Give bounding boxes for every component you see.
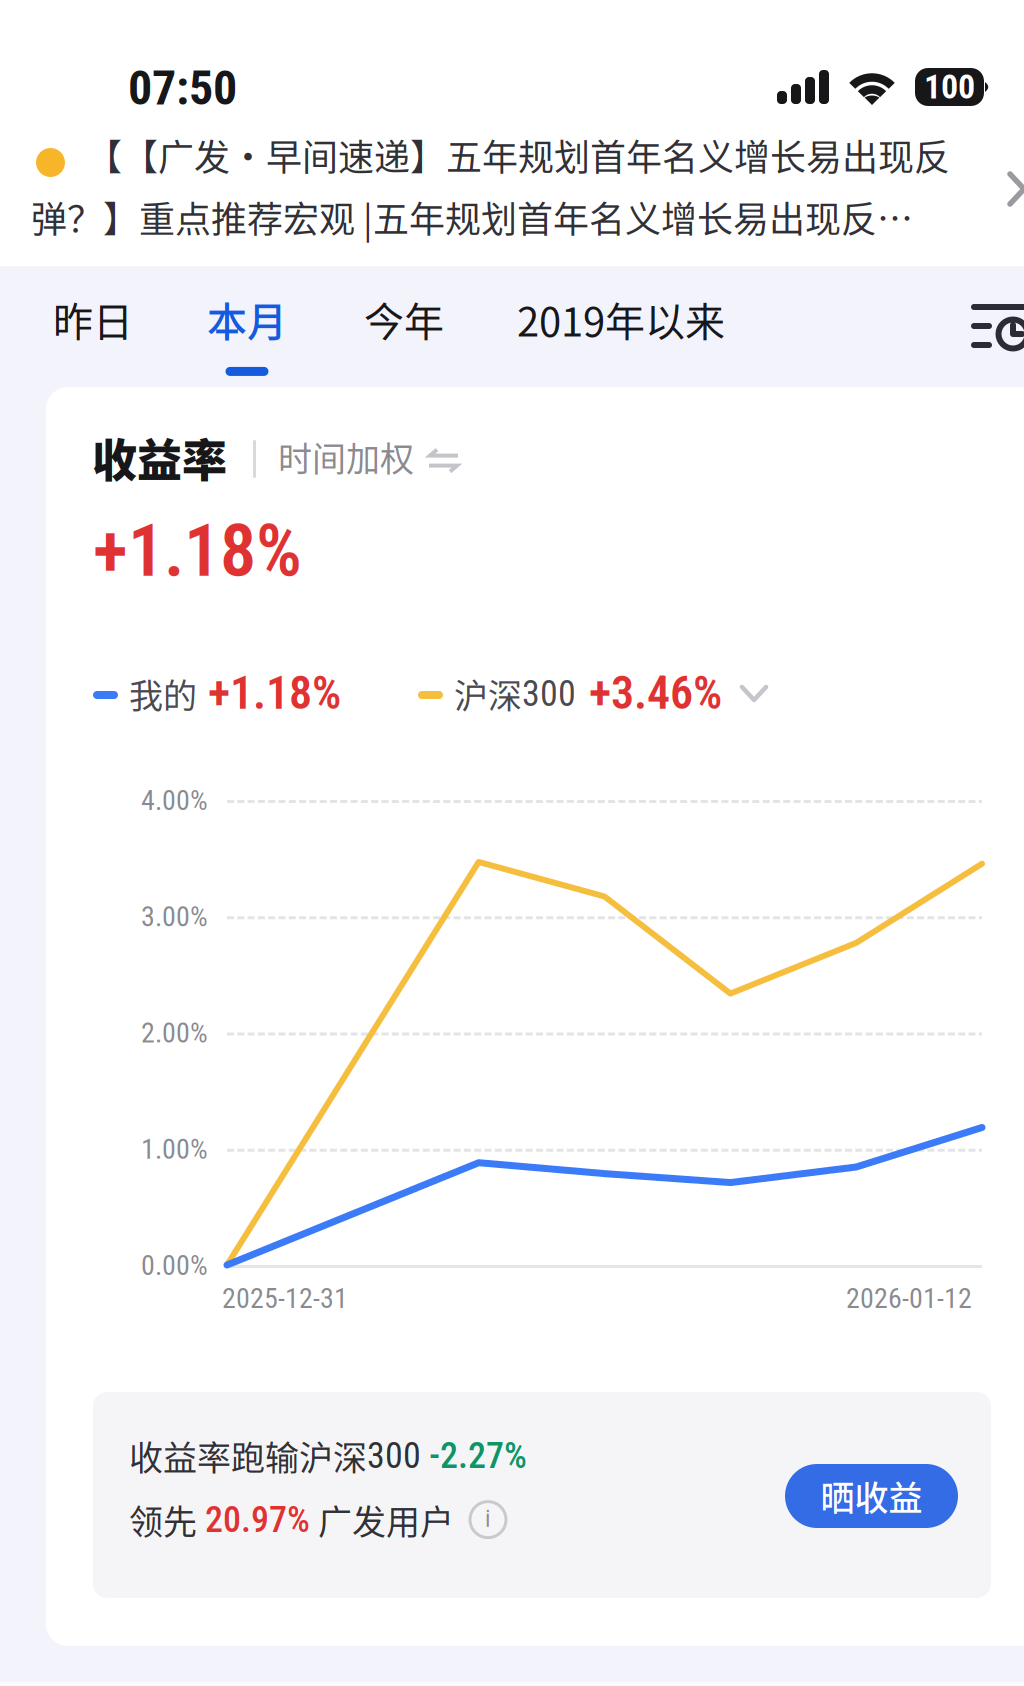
- staticText: 2025-12-31: [222, 1282, 348, 1315]
- staticText: -2.27%: [429, 1434, 527, 1477]
- staticText: 0.00%: [141, 1249, 208, 1282]
- staticText: 我的: [129, 669, 197, 718]
- staticText: 晒收益: [820, 1471, 922, 1521]
- button[interactable]: [742, 687, 768, 703]
- staticText: +1.18%: [93, 509, 302, 593]
- staticText: 【【广发•早间速递】五年规划首年名义增长易出现反: [86, 129, 950, 181]
- staticText: 1.00%: [141, 1133, 208, 1166]
- button[interactable]: 【【广发•早间速递】五年规划首年名义增长易出现反: [0, 128, 1024, 258]
- button[interactable]: 昨日: [39, 278, 147, 388]
- staticText: 300: [367, 1434, 429, 1477]
- staticText: 3.00%: [141, 900, 208, 933]
- staticText: 100: [924, 67, 975, 107]
- button[interactable]: 2019年以来: [503, 278, 739, 388]
- staticText: i: [485, 1505, 491, 1533]
- staticText: 300: [522, 672, 576, 715]
- staticText: 时间加权: [278, 432, 414, 481]
- staticText: 07:50: [128, 60, 237, 116]
- staticText: 广发用户: [310, 1495, 454, 1544]
- staticText: 领先: [129, 1495, 205, 1544]
- staticText: 收益率: [92, 425, 227, 490]
- staticText: 20.97%: [205, 1498, 310, 1541]
- button[interactable]: 本月: [193, 278, 301, 388]
- staticText: 今年: [364, 290, 444, 348]
- staticText: 昨日: [53, 290, 133, 348]
- staticText: 沪深: [454, 669, 522, 718]
- button[interactable]: 今年: [350, 278, 458, 388]
- staticText: 收益率跑输沪深: [129, 1431, 367, 1480]
- button[interactable]: [971, 304, 1024, 350]
- staticText: 2.00%: [141, 1016, 208, 1049]
- staticText: 2019年以来: [517, 290, 725, 348]
- staticText: 弹？】重点推荐宏观 |五年规划首年名义增长易出现反…: [31, 191, 913, 243]
- staticText: +3.46%: [589, 666, 722, 720]
- staticText: 4.00%: [141, 784, 208, 817]
- button[interactable]: 时间加权: [278, 432, 460, 481]
- staticText: +1.18%: [208, 666, 341, 720]
- staticText: 本月: [207, 290, 287, 348]
- staticText: 2026-01-12: [846, 1282, 972, 1315]
- button[interactable]: 晒收益: [785, 1464, 958, 1528]
